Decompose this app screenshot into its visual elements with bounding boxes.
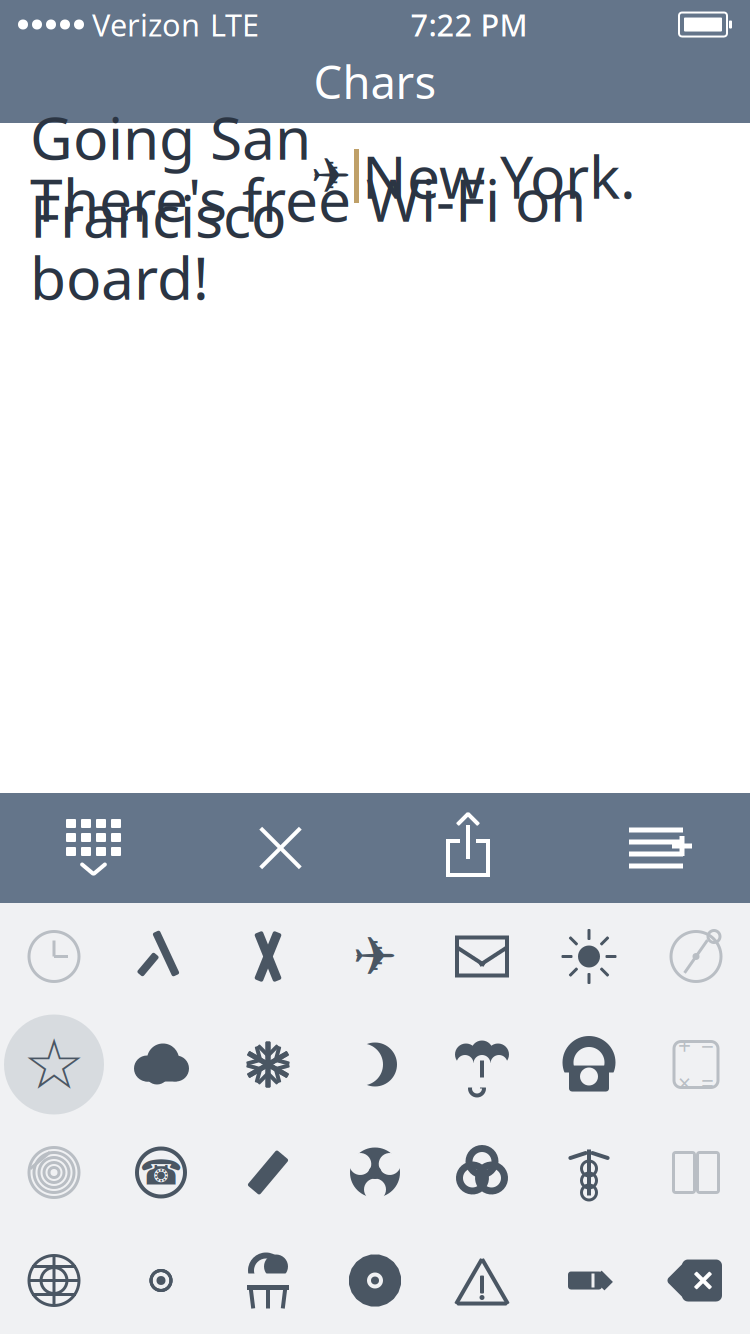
button[interactable]: Delete — [642, 1226, 749, 1334]
staticText: Going San Francisco — [30, 98, 311, 254]
button[interactable]: Share — [374, 793, 562, 903]
staticText: ✈ — [352, 926, 397, 987]
button[interactable]: Star — [0, 1010, 107, 1118]
button[interactable]: Moon — [321, 1010, 428, 1118]
button[interactable]: Clock — [0, 902, 107, 1010]
button[interactable]: Add to list — [562, 793, 750, 903]
button[interactable]: Compass — [642, 902, 749, 1010]
button[interactable]: Envelope — [428, 902, 535, 1010]
staticText: LTE — [210, 4, 259, 45]
staticText: ☎ — [139, 1153, 182, 1192]
button[interactable]: Pencil — [214, 1118, 321, 1226]
button[interactable]: Cross — [214, 902, 321, 1010]
button[interactable]: Airplane — [321, 902, 428, 1010]
button[interactable]: Telephone — [535, 1010, 642, 1118]
button[interactable]: Pen nib — [535, 1226, 642, 1334]
button[interactable]: Book — [642, 1118, 749, 1226]
button[interactable]: Check mark — [107, 902, 214, 1010]
button[interactable]: Phone — [107, 1118, 214, 1226]
staticText: × — [678, 1068, 691, 1098]
button[interactable]: Warning — [428, 1226, 535, 1334]
button[interactable]: Sun — [535, 902, 642, 1010]
button[interactable]: Snowflake — [214, 1010, 321, 1118]
button[interactable]: Globe — [0, 1226, 107, 1334]
staticText: = — [701, 1068, 714, 1098]
button[interactable]: Umbrella — [428, 1010, 535, 1118]
staticText: ☆ — [23, 1025, 85, 1104]
staticText: There's free Wi-Fi on board! — [30, 160, 586, 316]
button[interactable]: Caduceus — [535, 1118, 642, 1226]
staticText: 7:22 PM — [410, 4, 527, 45]
button[interactable]: Gear — [321, 1226, 428, 1334]
button[interactable]: Calculator — [642, 1010, 749, 1118]
staticText: New York. — [362, 137, 636, 215]
button[interactable]: Clear — [187, 793, 374, 903]
staticText: + — [678, 1031, 691, 1061]
button[interactable]: Biohazard — [428, 1118, 535, 1226]
button[interactable]: Lamp — [214, 1226, 321, 1334]
button[interactable]: Atom — [107, 1226, 214, 1334]
button[interactable]: Cloud — [107, 1010, 214, 1118]
staticText: ✈ — [311, 149, 351, 203]
staticText: Chars — [313, 51, 436, 112]
button[interactable]: Radiation — [321, 1118, 428, 1226]
button[interactable]: Show keyboard — [0, 793, 187, 903]
staticText: − — [701, 1031, 714, 1061]
staticText: Verizon — [84, 4, 200, 45]
button[interactable]: Spiral target — [0, 1118, 107, 1226]
